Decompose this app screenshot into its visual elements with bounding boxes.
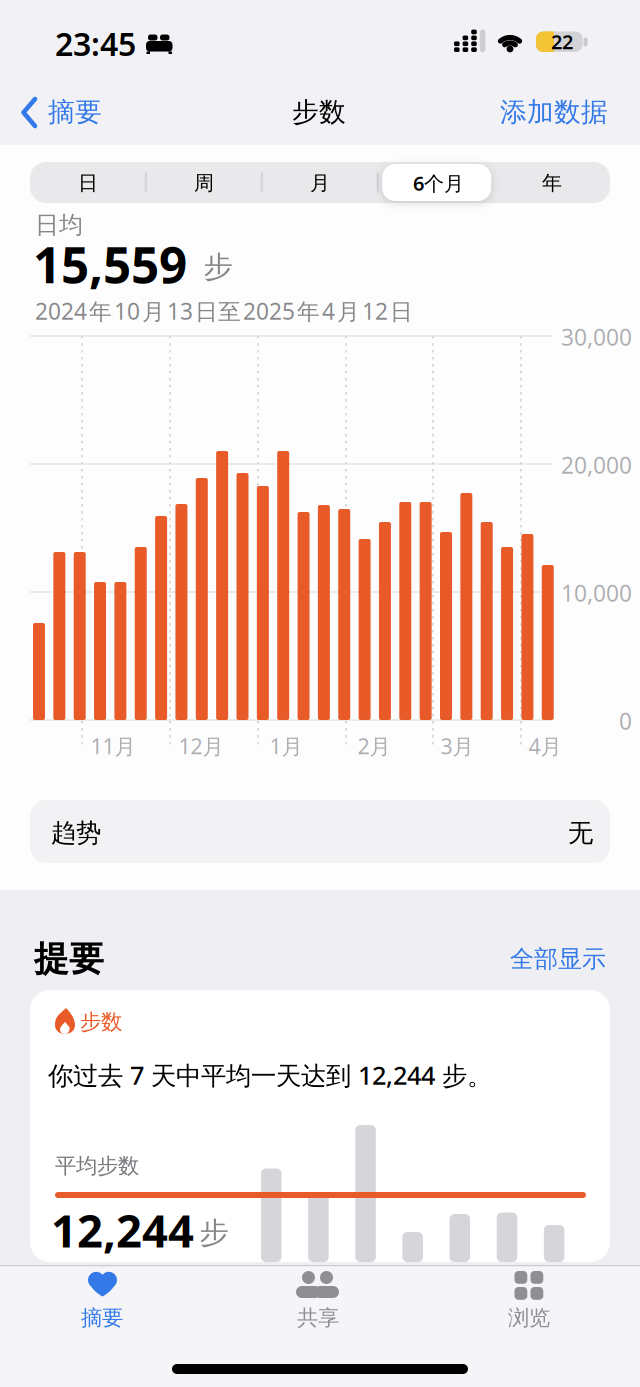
staticText: 年 [542,171,562,195]
staticText: 10,000 [561,578,632,608]
staticText: 0 [619,706,632,736]
staticText: 全部显示 [510,944,606,974]
staticText: 23:45 [55,22,136,65]
staticText: 月 [310,171,330,195]
staticText: 11月 [90,732,135,760]
staticText: 3月 [440,732,473,760]
staticText: 12月 [178,732,223,760]
staticText: 20,000 [561,450,632,480]
staticText: 步数 [80,1009,122,1035]
staticText: 摘要 [81,1305,123,1331]
staticText: 添加数据 [500,96,608,128]
staticText: 提要 [34,938,104,980]
staticText: 步 [199,1215,228,1251]
staticText: 22 [551,28,573,55]
staticText: 1月 [269,732,302,760]
staticText: 无 [568,817,593,848]
staticText: 4月 [528,732,561,760]
staticText: 步数 [292,96,346,128]
staticText: 6个月 [413,170,464,196]
staticText: 15,559 [33,231,187,297]
staticText: 平均步数 [55,1153,139,1179]
staticText: 你过去 7 天中平均一天达到 12,244 步。 [48,1058,492,1092]
staticText: 步 [203,249,232,285]
staticText: 2月 [357,732,390,760]
staticText: 日均 [35,210,83,240]
staticText: 2024 年 10 月 13 日至 2025 年 4 月 12 日 [35,296,413,326]
staticText: 周 [194,171,214,195]
staticText: 日 [78,171,98,195]
staticText: 12,244 [51,1200,194,1260]
staticText: 共享 [297,1305,339,1331]
staticText: 30,000 [561,322,632,352]
staticText: 趋势 [51,817,101,848]
staticText: 摘要 [48,96,102,128]
staticText: 浏览 [508,1305,550,1331]
